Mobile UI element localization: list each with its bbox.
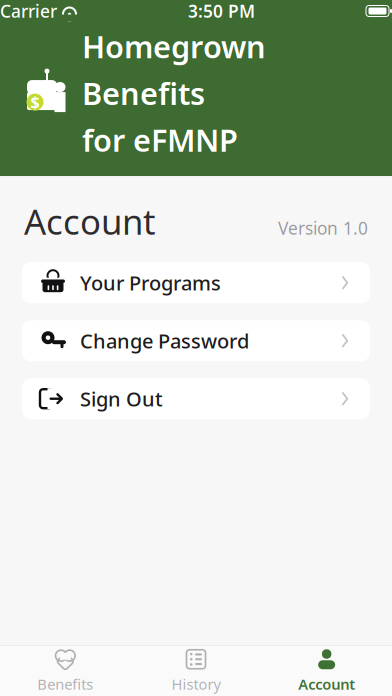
staticText: Carrier (0, 0, 57, 22)
button[interactable]: Benefits (0, 646, 131, 696)
staticText: Change Password (80, 327, 249, 354)
button[interactable]: Sign Out (22, 378, 370, 419)
staticText: Homegrown Benefits for eFMNP (82, 26, 266, 160)
staticText: Your Programs (80, 269, 221, 296)
button[interactable]: Your Programs (22, 262, 370, 303)
staticText: Sign Out (80, 385, 163, 412)
staticText: Account (298, 674, 355, 694)
staticText: $ (30, 91, 39, 113)
button[interactable]: Change Password (22, 320, 370, 361)
button[interactable]: History (131, 646, 261, 696)
staticText: Account (24, 198, 156, 244)
button[interactable]: Account (261, 646, 392, 696)
staticText: 3:50 PM (188, 0, 255, 22)
staticText: Benefits (37, 674, 93, 694)
staticText: Version 1.0 (278, 216, 368, 239)
staticText: History (171, 674, 220, 694)
